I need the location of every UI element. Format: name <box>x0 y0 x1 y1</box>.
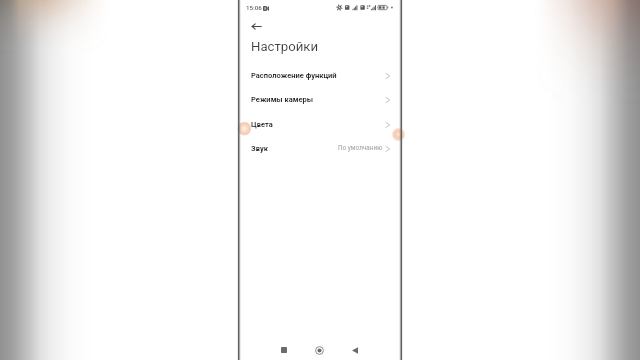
staticText: Звук <box>251 144 268 153</box>
button[interactable]: Home <box>311 342 327 358</box>
staticText: По умолчанию <box>338 144 383 152</box>
staticText: Режимы камеры <box>251 95 314 104</box>
button[interactable]: Звук <box>238 137 401 161</box>
staticText: Настройки <box>251 39 319 54</box>
button[interactable]: Расположение функций <box>238 64 401 88</box>
button[interactable]: Режимы камеры <box>238 88 401 112</box>
button[interactable]: Recents <box>276 342 292 358</box>
staticText: 15:06 <box>246 4 262 11</box>
staticText: Расположение функций <box>251 71 337 80</box>
button[interactable]: Цвета <box>238 113 401 137</box>
staticText: Цвета <box>251 120 273 129</box>
button[interactable]: Back <box>247 17 265 35</box>
button[interactable]: Back <box>347 342 363 358</box>
